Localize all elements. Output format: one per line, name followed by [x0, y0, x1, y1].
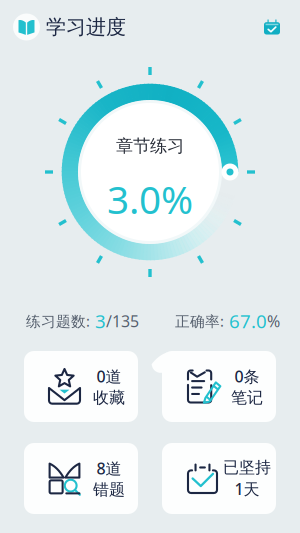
- staticText: 正确率:: [175, 311, 224, 331]
- button[interactable]: 8道: [24, 443, 138, 514]
- staticText: 3: [95, 309, 106, 333]
- staticText: 练习题数:: [26, 311, 90, 331]
- staticText: 8道: [96, 457, 121, 479]
- staticText: 章节练习: [116, 135, 184, 157]
- staticText: 笔记: [231, 388, 263, 407]
- staticText: 0条: [234, 365, 259, 387]
- staticText: 1天: [234, 478, 259, 499]
- staticText: 已坚持: [223, 457, 271, 477]
- button[interactable]: 0道: [24, 351, 138, 422]
- staticText: 3.0%: [107, 173, 193, 225]
- button[interactable]: 日历打卡: [257, 13, 287, 41]
- staticText: 错题: [93, 480, 125, 499]
- staticText: 学习进度: [46, 15, 126, 39]
- staticText: 67.0: [229, 309, 267, 333]
- staticText: /: [106, 310, 112, 332]
- staticText: 收藏: [93, 388, 125, 407]
- staticText: 135: [112, 310, 139, 332]
- staticText: %: [267, 310, 280, 332]
- staticText: 0道: [96, 365, 121, 387]
- button[interactable]: 已坚持: [162, 443, 276, 514]
- button[interactable]: 0条: [162, 351, 276, 422]
